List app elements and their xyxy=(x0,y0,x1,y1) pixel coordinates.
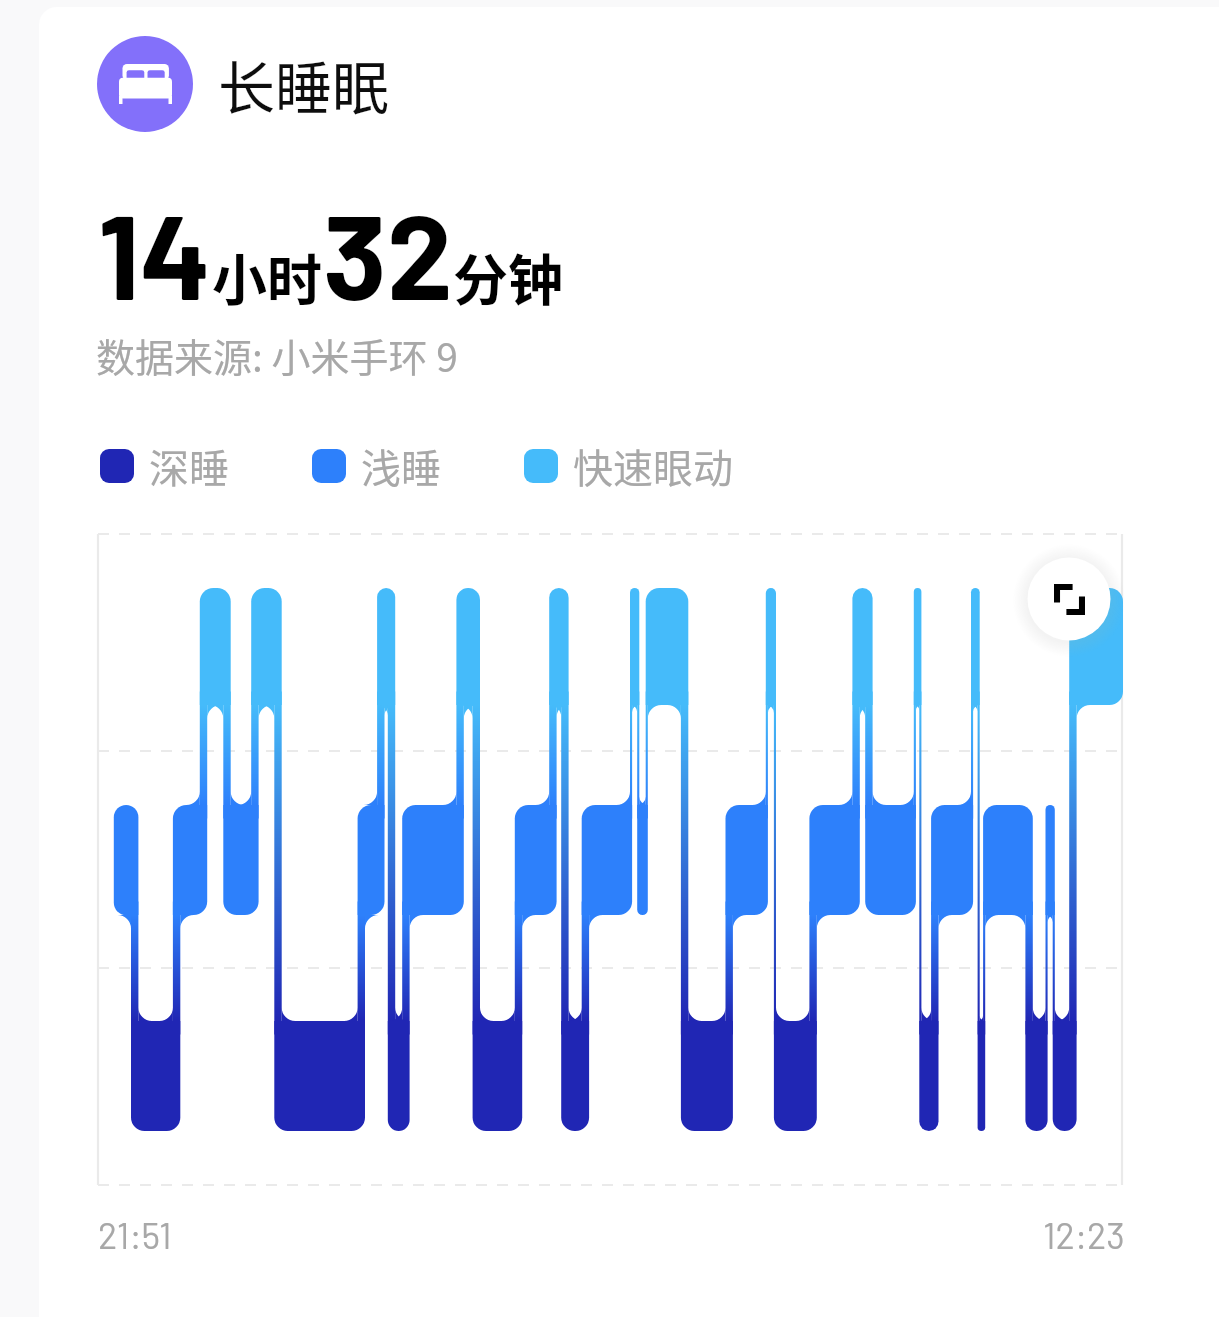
staticText: 浅睡 xyxy=(361,437,441,495)
staticText: 12:23 xyxy=(1043,1213,1125,1256)
staticText: 14 xyxy=(98,182,212,324)
staticText: 21:51 xyxy=(98,1213,172,1256)
staticText: 32 xyxy=(323,182,453,324)
button[interactable]: Expand chart xyxy=(1011,541,1127,657)
staticText: 数据来源: 小米手环 9 xyxy=(96,327,458,383)
staticText: 长睡眠 xyxy=(218,43,389,126)
button[interactable]: 快速眼动 xyxy=(524,437,733,495)
button[interactable]: 浅睡 xyxy=(312,437,441,495)
staticText: 小时 xyxy=(212,236,323,316)
staticText: 分钟 xyxy=(453,236,564,316)
staticText: 深睡 xyxy=(149,437,229,495)
button[interactable]: 深睡 xyxy=(100,437,229,495)
staticText: 快速眼动 xyxy=(573,437,733,495)
button[interactable]: 长睡眠 xyxy=(97,36,389,132)
